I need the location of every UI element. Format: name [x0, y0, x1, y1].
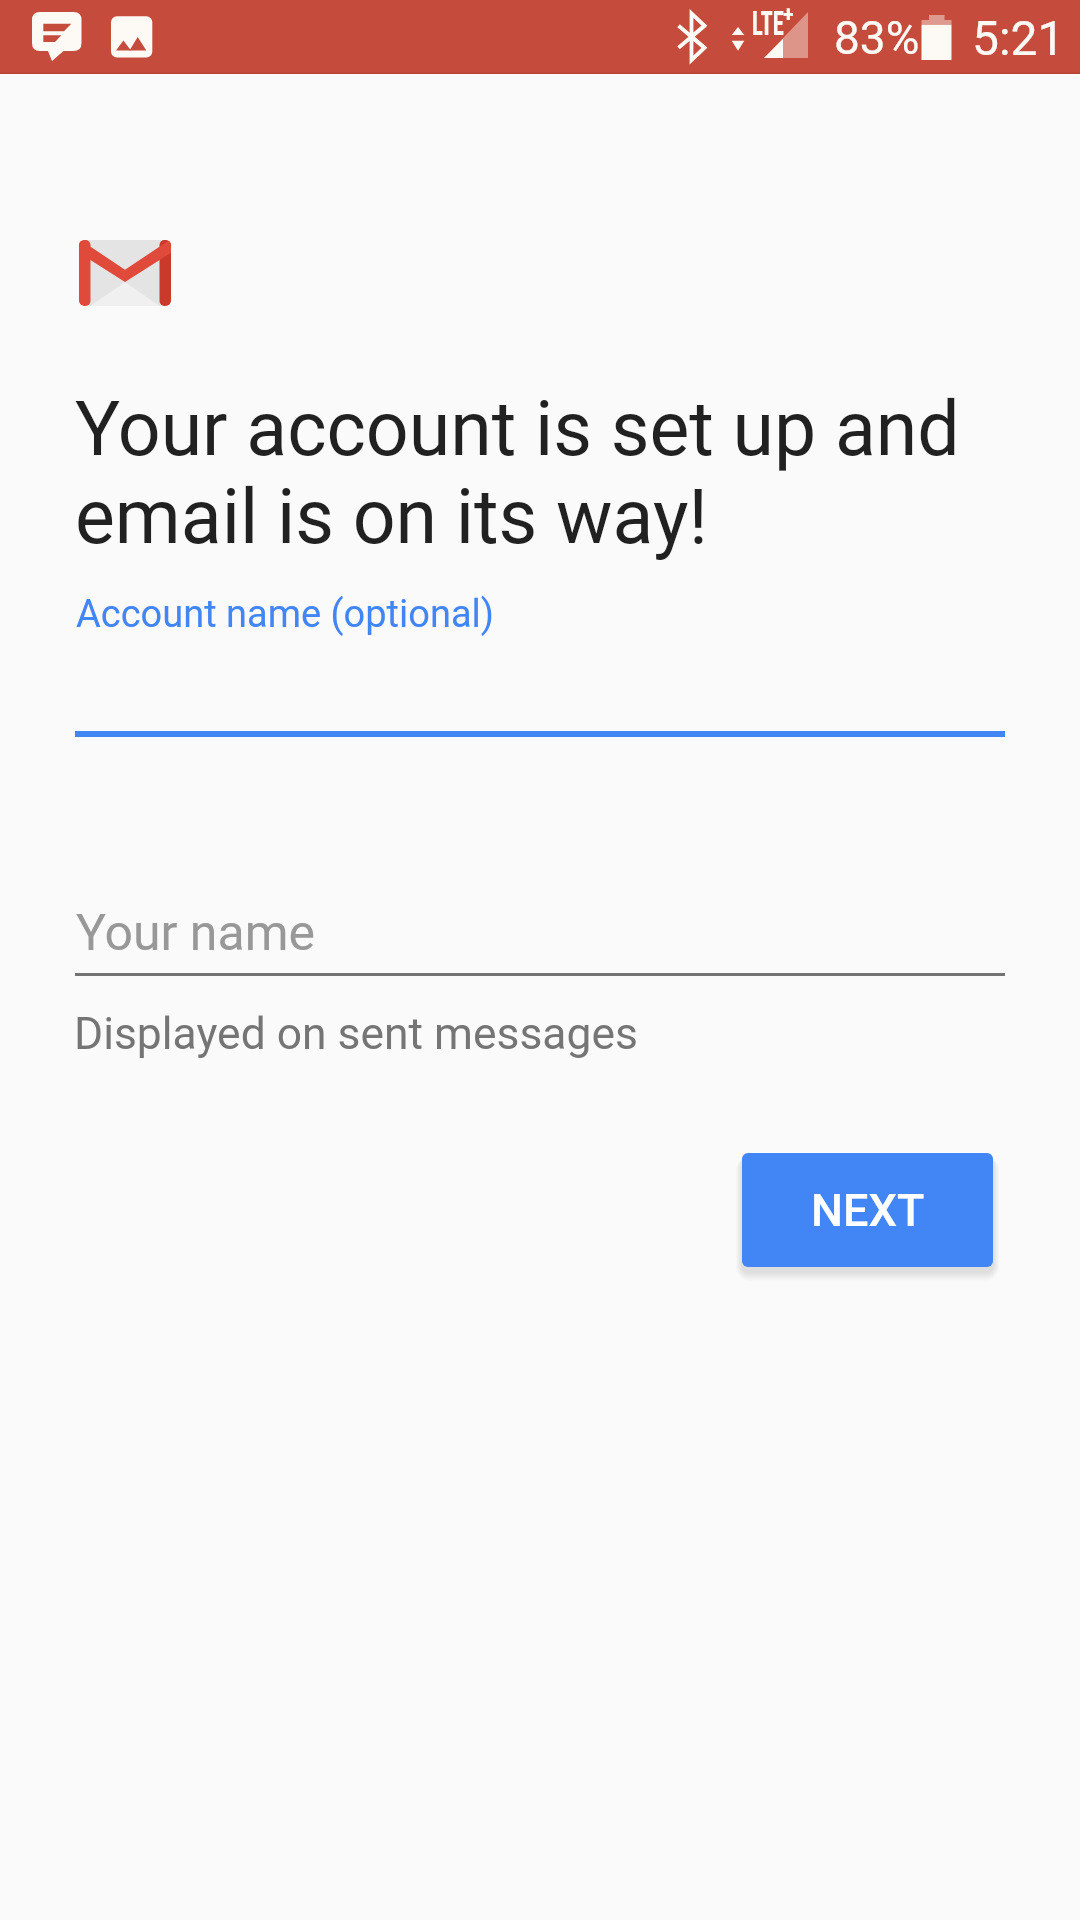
other: Gmail — [79, 240, 171, 306]
staticText: 5:21 — [972, 10, 1065, 66]
staticText: Your name — [76, 904, 316, 963]
staticText: Your account is set up and email is on i… — [75, 385, 975, 562]
staticText: Displayed on sent messages — [74, 1008, 638, 1060]
staticText: Account name (optional) — [76, 592, 495, 637]
button[interactable]: NEXT — [742, 1153, 993, 1267]
staticText: NEXT — [811, 1184, 925, 1237]
button[interactable]: Account name (optional) — [75, 588, 1005, 737]
staticText: + — [783, 1, 794, 27]
button[interactable]: Your name — [75, 900, 1005, 976]
staticText: 83% — [834, 11, 920, 65]
staticText: LTE — [752, 4, 784, 43]
